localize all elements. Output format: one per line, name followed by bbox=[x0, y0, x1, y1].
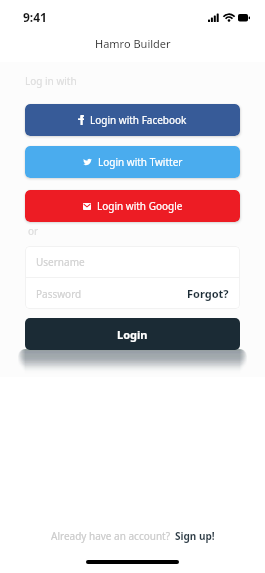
button[interactable]: Login with Google bbox=[25, 190, 240, 222]
button[interactable]: Login with Facebook bbox=[25, 104, 240, 136]
button[interactable]: Login bbox=[25, 318, 240, 350]
staticText: 9:41 bbox=[23, 9, 47, 25]
staticText: Password bbox=[36, 287, 82, 301]
staticText: Hamro Builder bbox=[95, 36, 171, 51]
staticText: Already have an account? bbox=[51, 529, 171, 543]
staticText: Login bbox=[117, 327, 148, 342]
staticText: Log in with bbox=[25, 74, 77, 88]
button[interactable]: Forgot? bbox=[187, 286, 229, 301]
button[interactable]: Username bbox=[25, 246, 240, 277]
staticText: Login with Facebook bbox=[90, 113, 187, 127]
button[interactable]: Sign up! bbox=[175, 529, 215, 543]
button[interactable]: Login with Twitter bbox=[25, 146, 240, 178]
button[interactable]: Password bbox=[25, 278, 240, 309]
staticText: Login with Google bbox=[97, 199, 183, 213]
other: Signal, Wi-Fi and battery status bbox=[208, 12, 249, 22]
staticText: Username bbox=[36, 255, 85, 269]
staticText: Login with Twitter bbox=[98, 155, 183, 169]
staticText: or bbox=[28, 224, 39, 238]
